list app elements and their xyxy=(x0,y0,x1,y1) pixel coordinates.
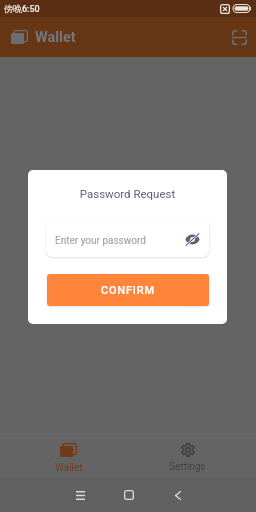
staticText: 傍晚6:50 xyxy=(4,3,40,14)
staticText: Wallet xyxy=(55,462,83,474)
button[interactable]: Scan QR code xyxy=(225,23,253,51)
button[interactable]: Wallet xyxy=(9,438,128,478)
button[interactable]: Settings xyxy=(128,438,247,478)
button[interactable]: Enter your password xyxy=(46,220,209,257)
button[interactable]: Recent apps xyxy=(56,478,104,512)
button[interactable]: Show password xyxy=(183,230,201,248)
button[interactable]: Back xyxy=(153,478,202,512)
button[interactable]: CONFIRM xyxy=(47,274,209,306)
staticText: Settings xyxy=(169,461,206,473)
staticText: CONFIRM xyxy=(101,284,155,297)
staticText: Password Request xyxy=(28,187,227,200)
staticText: Enter your password xyxy=(55,235,146,247)
button[interactable]: Home xyxy=(104,478,153,512)
staticText: Wallet xyxy=(35,29,76,46)
